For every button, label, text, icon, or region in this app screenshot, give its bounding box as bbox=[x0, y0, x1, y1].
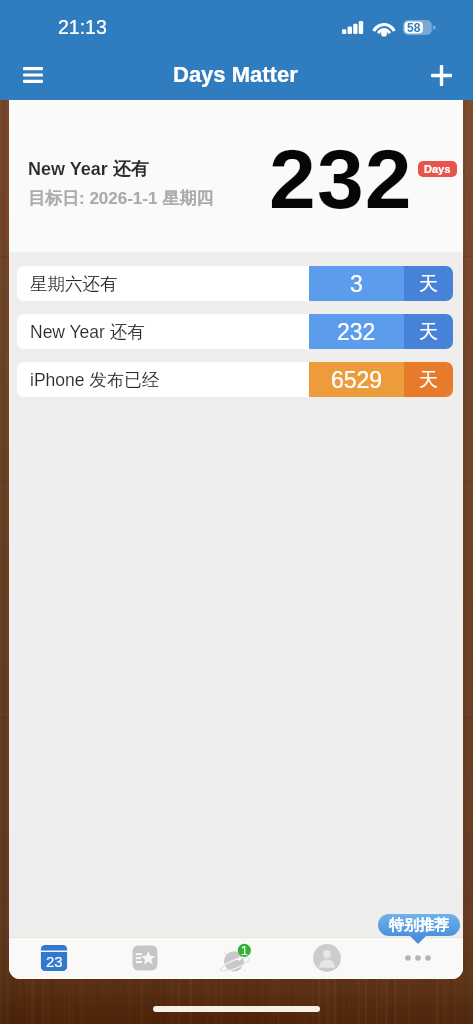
staticText: New Year 还有 bbox=[30, 321, 145, 343]
button[interactable]: Add event bbox=[421, 55, 461, 95]
staticText: 3 bbox=[350, 271, 363, 297]
staticText: 目标日: 2026-1-1 星期四 bbox=[28, 188, 214, 209]
button[interactable]: iPhone 发布已经 bbox=[17, 362, 453, 397]
button[interactable]: Menu bbox=[13, 55, 53, 95]
staticText: 21:13 bbox=[58, 16, 107, 38]
button[interactable]: Countdown bbox=[23, 937, 85, 979]
staticText: iPhone 发布已经 bbox=[30, 369, 160, 391]
staticText: 天 bbox=[419, 320, 438, 344]
staticText: 星期六还有 bbox=[30, 273, 118, 295]
staticText: 58 bbox=[407, 21, 421, 34]
staticText: Days bbox=[424, 163, 451, 175]
staticText: 特别推荐 bbox=[389, 916, 449, 935]
staticText: 232 bbox=[269, 132, 413, 226]
staticText: 6529 bbox=[331, 367, 383, 393]
staticText: 1 bbox=[241, 944, 248, 957]
staticText: 天 bbox=[419, 272, 438, 296]
button[interactable]: Profile bbox=[296, 937, 358, 979]
button[interactable]: More bbox=[387, 937, 449, 979]
staticText: Days Matter bbox=[173, 62, 298, 87]
staticText: New Year 还有 bbox=[28, 158, 149, 181]
button[interactable]: 星期六还有 bbox=[17, 266, 453, 301]
staticText: 23 bbox=[46, 953, 63, 970]
button[interactable]: 特别推荐 bbox=[378, 914, 460, 936]
button[interactable]: New Year 还有 bbox=[17, 314, 453, 349]
button[interactable]: Collections bbox=[114, 937, 176, 979]
staticText: 天 bbox=[419, 368, 438, 392]
staticText: 232 bbox=[337, 319, 376, 345]
button[interactable]: Discover bbox=[205, 937, 267, 979]
